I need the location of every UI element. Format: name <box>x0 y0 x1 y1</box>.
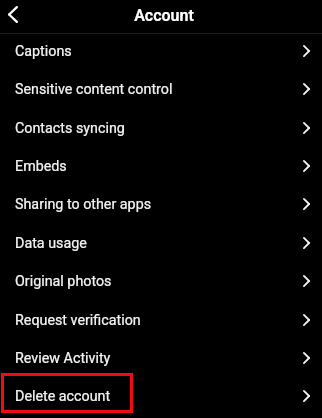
staticText: Captions <box>15 43 303 60</box>
button[interactable]: Delete account <box>0 377 322 415</box>
button[interactable]: Request verification <box>0 301 322 339</box>
staticText: Sharing to other apps <box>15 196 303 213</box>
staticText: Data usage <box>15 235 303 252</box>
button[interactable]: Original photos <box>0 262 322 300</box>
button[interactable]: Review Activity <box>0 339 322 377</box>
staticText: Account <box>134 6 194 25</box>
button[interactable]: Sharing to other apps <box>0 185 322 223</box>
staticText: Delete account <box>15 388 303 405</box>
button[interactable]: Contacts syncing <box>0 109 322 147</box>
button[interactable]: Data usage <box>0 224 322 262</box>
button[interactable]: Embeds <box>0 147 322 185</box>
staticText: Contacts syncing <box>15 120 303 137</box>
staticText: Request verification <box>15 312 303 329</box>
button[interactable]: Sensitive content control <box>0 70 322 108</box>
staticText: Review Activity <box>15 350 303 367</box>
button[interactable]: Captions <box>0 32 322 70</box>
staticText: Embeds <box>15 158 303 175</box>
button[interactable]: Back <box>0 0 29 30</box>
staticText: Original photos <box>15 273 303 290</box>
staticText: Sensitive content control <box>15 81 303 98</box>
